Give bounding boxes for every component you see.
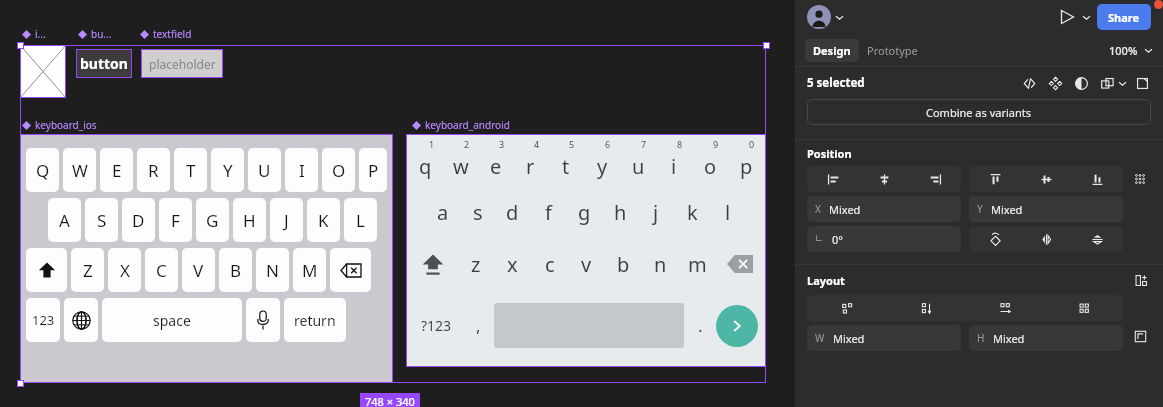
button[interactable]: v (568, 238, 605, 290)
button[interactable]: a (425, 186, 460, 238)
button[interactable]: Align top (969, 166, 1021, 192)
button[interactable]: Frame (1133, 74, 1151, 92)
button[interactable]: L (344, 198, 377, 242)
button[interactable]: Add auto layout (1131, 270, 1151, 290)
button[interactable]: h (602, 186, 638, 238)
button[interactable]: Shift (26, 248, 67, 292)
button[interactable]: Vertical layout (886, 295, 965, 321)
button[interactable]: 9 (692, 142, 728, 186)
button[interactable]: C (145, 248, 178, 292)
button[interactable]: Horizontal layout (965, 295, 1044, 321)
button[interactable]: Globe (64, 298, 98, 342)
button[interactable]: x (494, 238, 531, 290)
button[interactable]: Mask (1072, 74, 1090, 92)
button[interactable]: Resize (1129, 325, 1151, 347)
button[interactable]: H (233, 198, 266, 242)
button[interactable]: space (102, 298, 242, 342)
button[interactable]: Align right (910, 166, 961, 192)
button[interactable]: z (457, 238, 494, 290)
button[interactable]: j (638, 186, 674, 238)
button[interactable]: No layout (807, 295, 886, 321)
button[interactable]: O (322, 148, 355, 192)
button[interactable]: Y (211, 148, 244, 192)
button[interactable]: 3 (478, 142, 513, 186)
button[interactable]: D (122, 198, 155, 242)
button[interactable]: 123 (26, 298, 60, 342)
button[interactable]: 100% (1109, 43, 1138, 58)
button[interactable]: ?123 (410, 290, 462, 361)
button[interactable]: H (977, 325, 1115, 351)
button[interactable]: return (284, 298, 346, 342)
button[interactable]: F (159, 198, 192, 242)
button[interactable]: P (359, 148, 387, 192)
button[interactable]: W (815, 325, 953, 351)
button[interactable]: U (248, 148, 281, 192)
button[interactable]: G (196, 198, 229, 242)
button[interactable]: Design (813, 43, 851, 58)
button[interactable]: Z (71, 248, 104, 292)
button[interactable]: K (307, 198, 340, 242)
button[interactable]: R (137, 148, 170, 192)
button[interactable]: Share (1097, 4, 1151, 30)
button[interactable]: Align bottom (1072, 166, 1123, 192)
button[interactable]: Component (1046, 74, 1064, 92)
button[interactable]: m (679, 238, 716, 290)
button[interactable]: placeholder (141, 49, 223, 78)
button[interactable]: Flip horizontal (1021, 226, 1072, 252)
button[interactable]: 8 (656, 142, 692, 186)
button[interactable]: Image placeholder (20, 45, 66, 98)
button[interactable]: Code (1020, 74, 1038, 92)
button[interactable]: 6 (584, 142, 620, 186)
button[interactable]: E (100, 148, 133, 192)
button[interactable]: W (63, 148, 96, 192)
button[interactable]: n (642, 238, 679, 290)
button[interactable]: N (256, 248, 289, 292)
button[interactable]: l (710, 186, 746, 238)
button[interactable]: c (531, 238, 568, 290)
button[interactable]: 7 (620, 142, 656, 186)
button[interactable]: S (85, 198, 118, 242)
button[interactable]: ∟ (815, 226, 953, 252)
button[interactable]: X (108, 248, 141, 292)
button[interactable]: d (495, 186, 530, 238)
button[interactable]: s (460, 186, 495, 238)
button[interactable]: Flip vertical (1072, 226, 1123, 252)
button[interactable]: 0 (728, 142, 764, 186)
button[interactable]: button (76, 49, 132, 78)
button[interactable]: Dictation (246, 298, 280, 342)
button[interactable]: f (530, 186, 566, 238)
button[interactable]: Q (26, 148, 59, 192)
button[interactable]: 1 (408, 142, 443, 186)
button[interactable]: 2 (443, 142, 478, 186)
button[interactable]: Align center h (859, 166, 910, 192)
button[interactable]: Backspace (716, 238, 764, 290)
button[interactable]: Combine as variants (807, 99, 1151, 125)
button[interactable]: I (285, 148, 318, 192)
button[interactable]: Align left (807, 166, 859, 192)
button[interactable]: , (462, 290, 494, 361)
button[interactable]: Distribute (1129, 168, 1151, 190)
button[interactable]: Present (1056, 6, 1078, 28)
button[interactable]: B (219, 248, 252, 292)
button[interactable]: M (293, 248, 326, 292)
button[interactable]: J (270, 198, 303, 242)
button[interactable]: g (566, 186, 602, 238)
button[interactable]: T (174, 148, 207, 192)
button[interactable]: Shift (408, 238, 457, 290)
button[interactable]: Backspace (330, 248, 371, 292)
button[interactable]: X (815, 196, 953, 222)
button[interactable]: Boolean (1098, 74, 1116, 92)
button[interactable]: Rotate (969, 226, 1021, 252)
button[interactable]: Y (977, 196, 1115, 222)
button[interactable]: Align middle (1021, 166, 1072, 192)
button[interactable]: 5 (548, 142, 584, 186)
button[interactable]: Grid layout (1044, 295, 1123, 321)
button[interactable]: b (605, 238, 642, 290)
button[interactable]: V (182, 248, 215, 292)
button[interactable]: Enter (716, 305, 758, 347)
button[interactable]: Account (807, 5, 831, 29)
button[interactable]: k (674, 186, 710, 238)
button[interactable]: 4 (513, 142, 548, 186)
button[interactable]: Prototype (867, 43, 918, 58)
